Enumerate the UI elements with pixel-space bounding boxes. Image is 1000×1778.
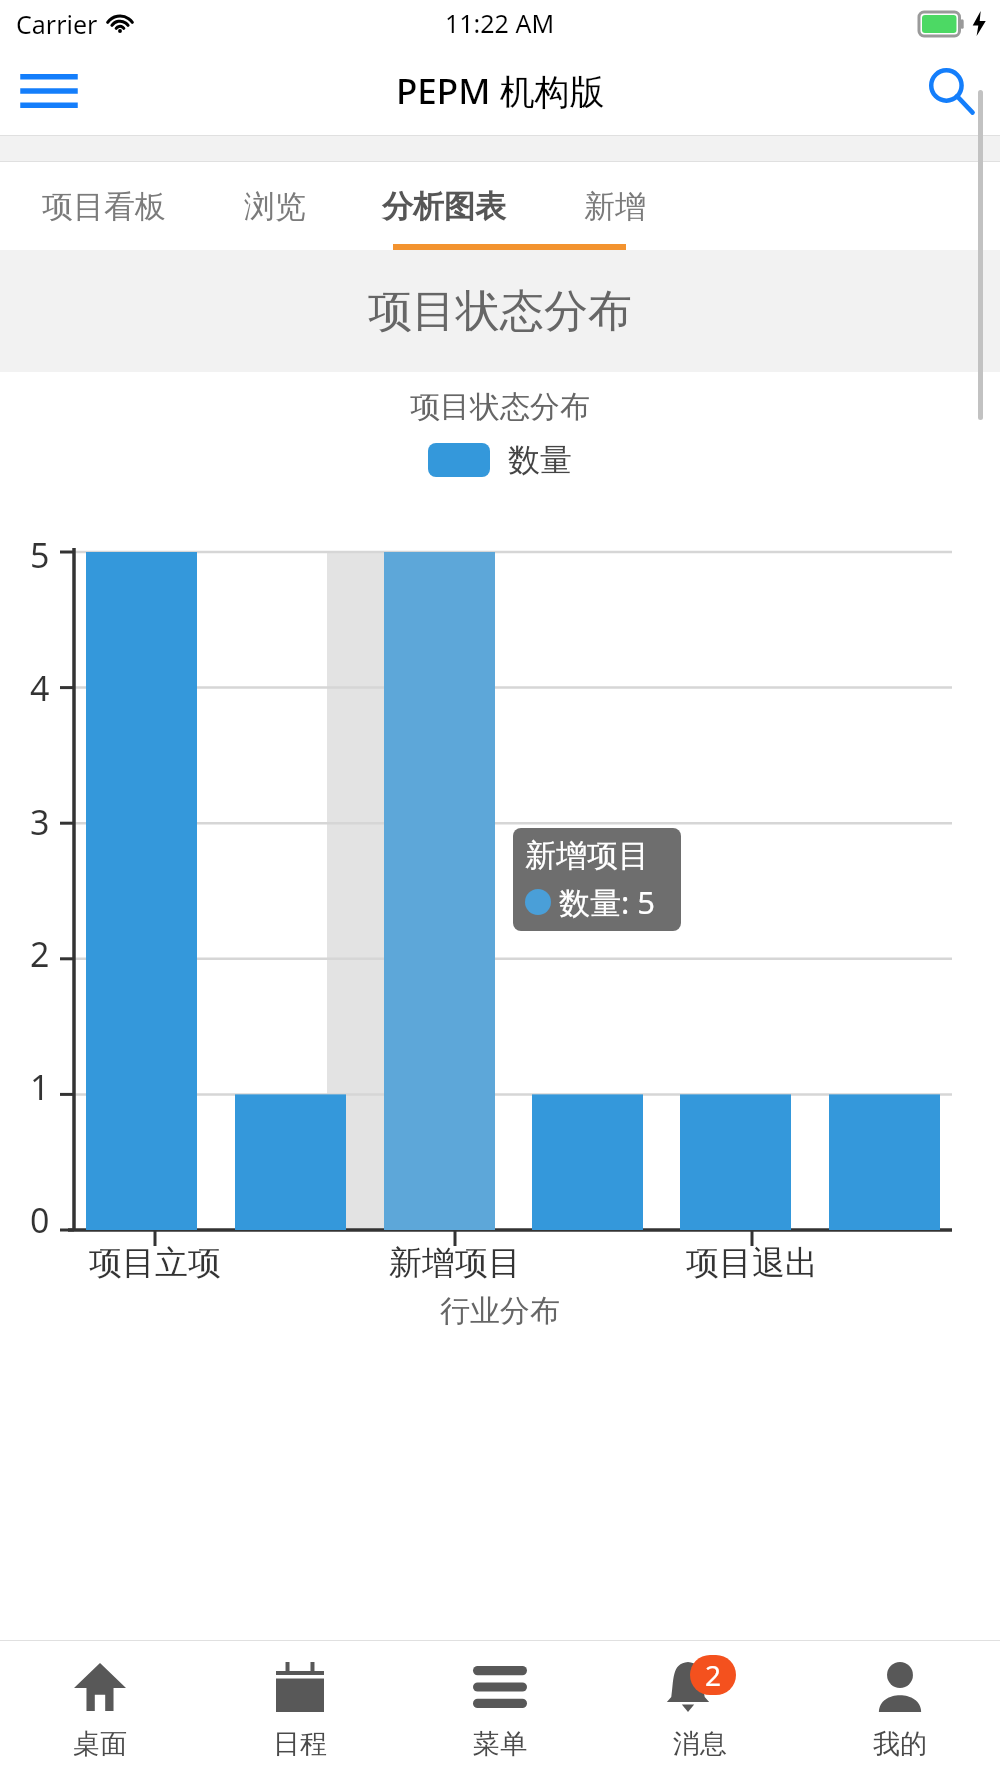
staticText: 数量 xyxy=(508,440,572,480)
staticText: 新增 xyxy=(584,187,646,226)
staticText: 3 xyxy=(30,799,50,845)
staticText: 行业分布 xyxy=(0,1292,1000,1330)
staticText: 新增项目 xyxy=(389,1242,521,1284)
staticText: 新增项目 xyxy=(525,836,649,875)
button[interactable]: 桌面 xyxy=(0,1641,200,1778)
button[interactable]: 菜单 xyxy=(400,1641,600,1778)
staticText: 4 xyxy=(30,665,50,711)
staticText: 项目立项 xyxy=(89,1242,221,1284)
staticText: 我的 xyxy=(873,1727,927,1761)
staticText: 日程 xyxy=(273,1727,327,1761)
staticText: 菜单 xyxy=(473,1727,527,1761)
button[interactable]: 我的 xyxy=(800,1641,1000,1778)
staticText: 数量: 5 xyxy=(559,881,656,923)
staticText: 2 xyxy=(30,931,50,977)
staticText: 消息 xyxy=(673,1727,727,1761)
staticText: 项目退出 xyxy=(686,1242,818,1284)
staticText: 0 xyxy=(30,1197,50,1243)
button[interactable]: 浏览 xyxy=(244,162,306,250)
staticText: 1 xyxy=(30,1064,50,1110)
staticText: 项目状态分布 xyxy=(0,388,1000,426)
staticText: PEPM 机构版 xyxy=(396,67,605,115)
button[interactable]: 分析图表 xyxy=(382,162,506,250)
button[interactable]: Search xyxy=(918,61,984,121)
button[interactable]: 2 xyxy=(600,1641,800,1778)
button[interactable]: 日程 xyxy=(200,1641,400,1778)
button[interactable]: 项目看板 xyxy=(42,162,166,250)
staticText: Carrier xyxy=(16,7,98,41)
staticText: 分析图表 xyxy=(382,187,506,226)
staticText: 2 xyxy=(705,1656,722,1694)
button[interactable]: 新增 xyxy=(584,162,646,250)
staticText: 项目状态分布 xyxy=(368,284,632,339)
staticText: 浏览 xyxy=(244,187,306,226)
staticText: 11:22 AM xyxy=(445,6,555,40)
staticText: 项目看板 xyxy=(42,187,166,226)
staticText: 桌面 xyxy=(73,1727,127,1761)
button[interactable]: Menu xyxy=(16,63,82,119)
staticText: 5 xyxy=(30,532,50,578)
